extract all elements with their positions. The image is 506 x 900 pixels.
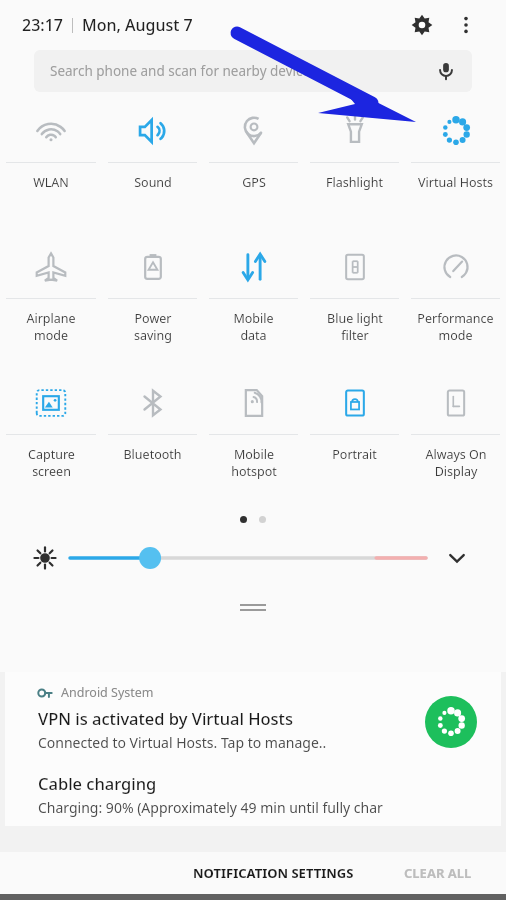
staticText: Mon, August 7 [82, 14, 193, 36]
staticText: Bluetooth [123, 446, 182, 463]
staticText: Charging: 90% (Approximately 49 min unti… [38, 798, 383, 817]
staticText: Mobile data [233, 310, 274, 343]
staticText: Mobile hotspot [231, 446, 277, 479]
button[interactable]: NOTIFICATION SETTINGS [183, 856, 364, 890]
button[interactable]: CLEAR ALL [394, 856, 482, 890]
staticText: VPN is activated by Virtual Hosts [38, 707, 293, 729]
button[interactable]: Portrait [304, 372, 405, 508]
staticText: WLAN [33, 174, 69, 191]
button[interactable]: Settings [402, 5, 442, 45]
button[interactable]: Sound [102, 100, 203, 236]
button[interactable]: Capture screen [0, 372, 102, 508]
staticText: GPS [242, 174, 266, 191]
staticText: Search phone and scan for nearby devices [50, 62, 317, 80]
staticText: 23:17 [22, 14, 63, 36]
button[interactable]: Bluetooth [102, 372, 203, 508]
button[interactable]: WLAN [0, 100, 102, 236]
button[interactable]: Blue light filter [304, 236, 405, 372]
button[interactable]: Flashlight [304, 100, 405, 236]
staticText: Capture screen [28, 446, 75, 479]
staticText: Performance mode [417, 310, 494, 343]
staticText: CLEAR ALL [404, 864, 472, 882]
button[interactable]: GPS [203, 100, 304, 236]
button[interactable]: Power saving [102, 236, 203, 372]
button[interactable]: Voice search [432, 57, 460, 85]
button[interactable]: Mobile data [203, 236, 304, 372]
staticText: Blue light filter [327, 310, 383, 343]
staticText: NOTIFICATION SETTINGS [193, 864, 354, 882]
staticText: Virtual Hosts [418, 174, 493, 191]
button[interactable] [70, 545, 426, 571]
staticText: Portrait [332, 446, 377, 463]
button[interactable]: Expand brightness settings [442, 543, 472, 573]
staticText: Power saving [134, 310, 172, 343]
staticText: Cable charging [38, 772, 157, 794]
staticText: Flashlight [326, 174, 383, 191]
staticText: Connected to Virtual Hosts. Tap to manag… [38, 733, 327, 752]
staticText: Android System [61, 684, 154, 701]
button[interactable]: Search phone and scan for nearby devices [34, 50, 472, 92]
button[interactable]: More options [448, 7, 484, 43]
button[interactable]: Cable charging [5, 772, 501, 826]
button[interactable]: Airplane mode [0, 236, 102, 372]
button[interactable]: Always On Display [405, 372, 506, 508]
button[interactable]: Android System [5, 672, 501, 772]
staticText: Sound [134, 174, 172, 191]
button[interactable]: Performance mode [405, 236, 506, 372]
button[interactable]: Mobile hotspot [203, 372, 304, 508]
button[interactable]: Virtual Hosts [405, 100, 506, 236]
staticText: Always On Display [425, 446, 487, 479]
staticText: Airplane mode [26, 310, 76, 343]
